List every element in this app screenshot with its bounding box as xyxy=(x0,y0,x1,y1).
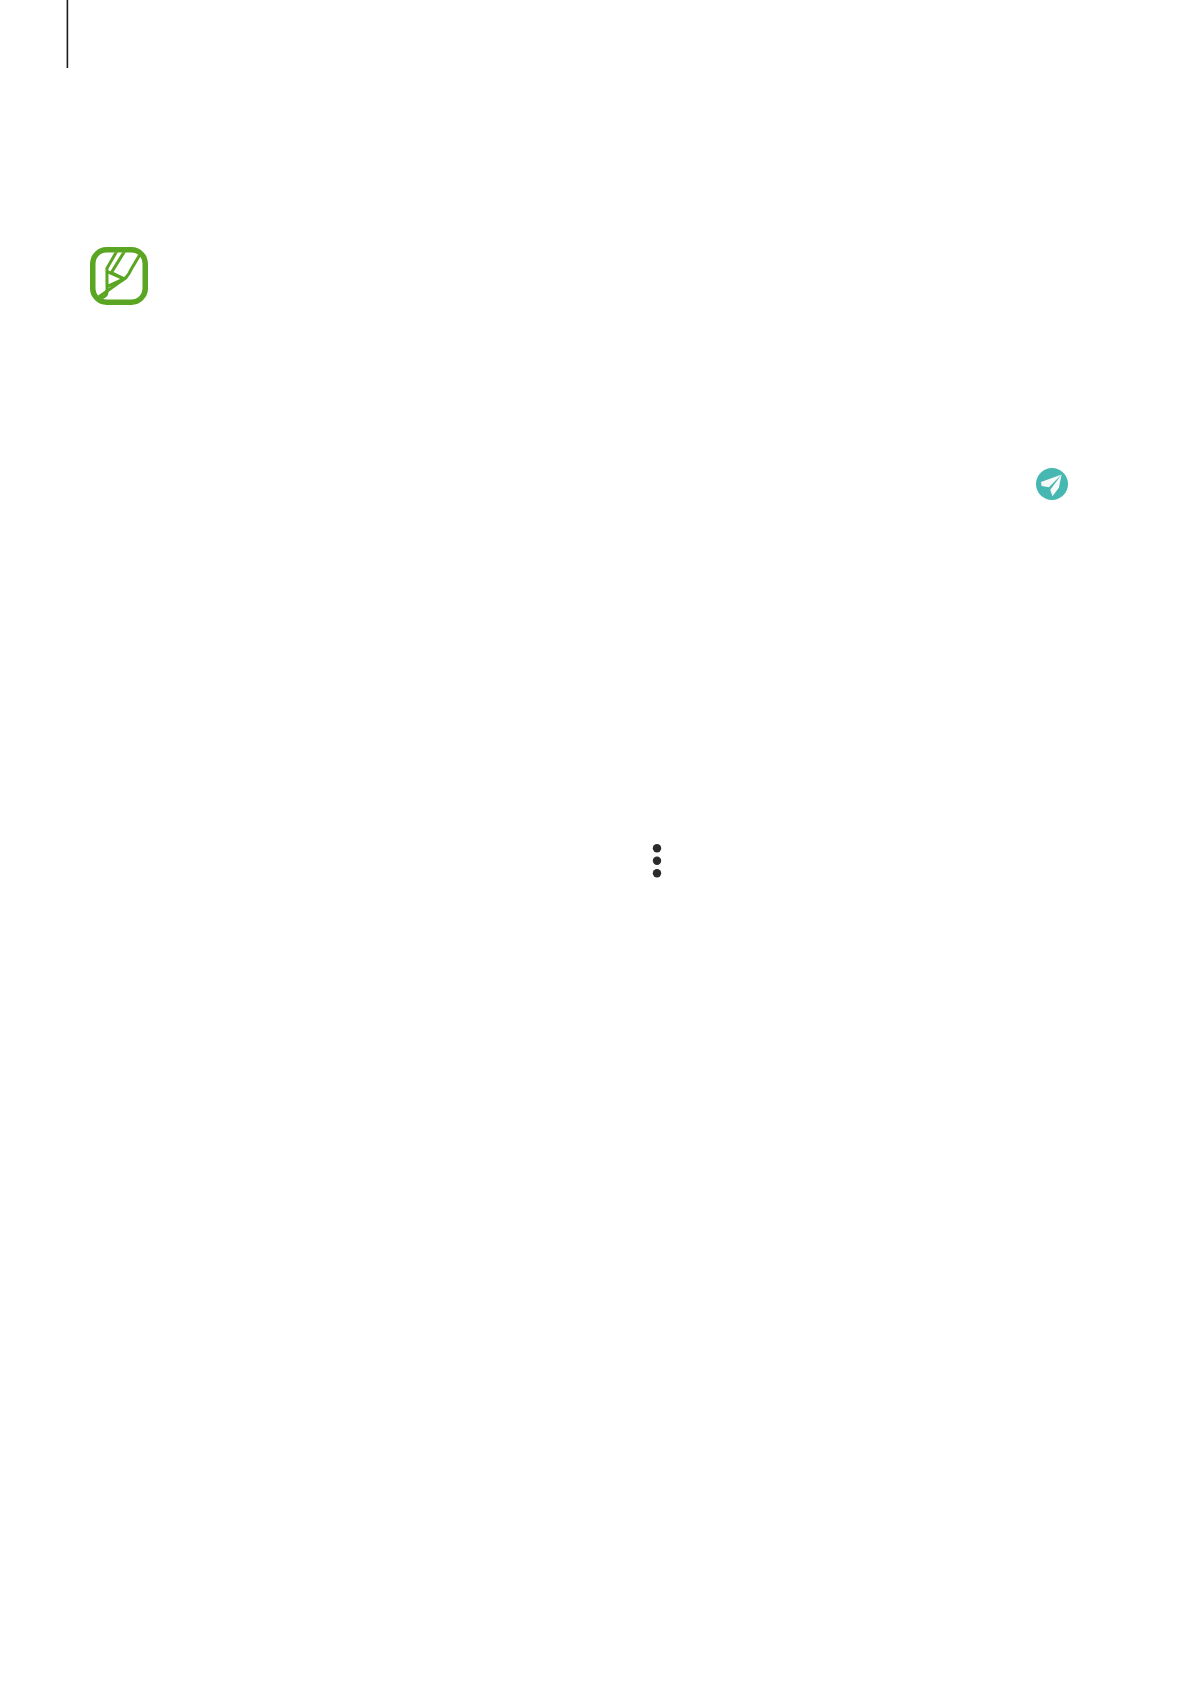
button[interactable]: More options xyxy=(637,833,677,873)
button[interactable]: Send xyxy=(1036,468,1068,500)
button[interactable]: Samsung Notes xyxy=(90,247,148,305)
